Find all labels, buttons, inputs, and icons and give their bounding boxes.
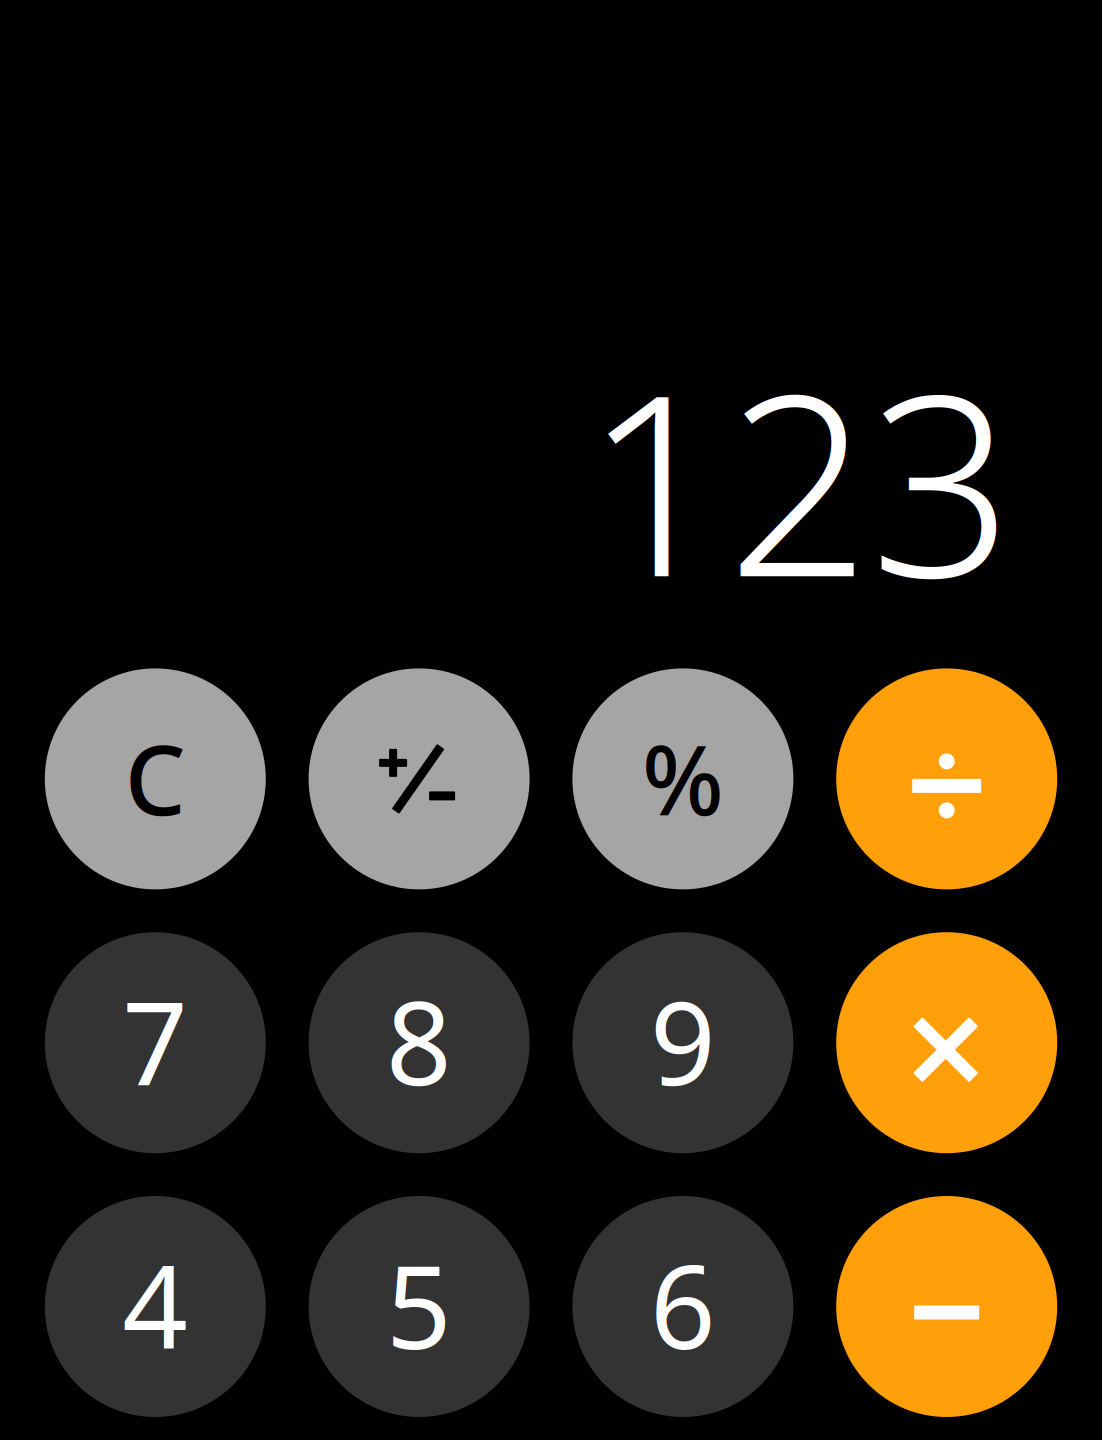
button[interactable]: 9 [572,932,793,1153]
staticText: 123 [584,312,1013,645]
button[interactable]: 8 [309,932,530,1153]
button[interactable]: Toggle sign [309,668,530,889]
button[interactable]: 7 [45,932,266,1153]
staticText: 7 [122,965,188,1117]
staticText: 8 [386,965,452,1117]
button[interactable]: 6 [572,1196,793,1417]
button[interactable]: % [572,668,793,889]
button[interactable]: Divide [836,668,1057,889]
button[interactable]: Multiply [836,932,1057,1153]
staticText: 9 [650,965,716,1117]
button[interactable]: Subtract [836,1196,1057,1417]
button[interactable]: C [45,668,266,889]
staticText: % [642,714,724,842]
button[interactable]: 4 [45,1196,266,1417]
button[interactable]: 5 [309,1196,530,1417]
staticText: 4 [122,1228,188,1381]
staticText: C [125,714,186,842]
staticText: 5 [386,1228,452,1381]
staticText: 6 [650,1228,716,1381]
